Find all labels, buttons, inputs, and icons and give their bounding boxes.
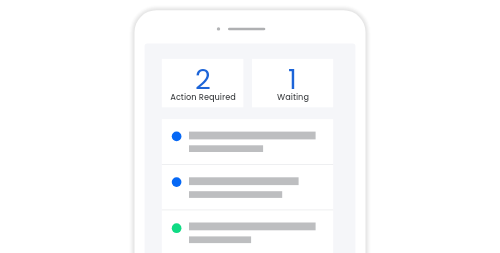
staticText: 1 <box>288 60 297 90</box>
staticText: Waiting <box>277 91 309 102</box>
button[interactable]: List item 3 <box>162 209 333 253</box>
button[interactable]: List item 1 <box>162 119 333 164</box>
button[interactable]: Waiting, 1 item <box>252 59 333 107</box>
staticText: Action Required <box>170 91 236 102</box>
button[interactable]: List item 2 <box>162 164 333 209</box>
staticText: 2 <box>195 60 211 90</box>
button[interactable]: Action Required, 2 items <box>162 59 244 107</box>
